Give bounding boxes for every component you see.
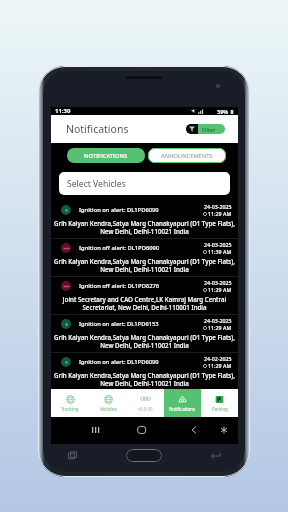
staticText: Filter (202, 126, 216, 133)
staticText: Parking (212, 406, 228, 412)
button[interactable]: ANNOUNCEMENTS (148, 148, 226, 163)
staticText: Notifications (66, 122, 129, 136)
button[interactable]: NOTIFICATIONS (67, 148, 145, 163)
staticText: Grih Kalyan Kendra,Satya Marg Chanakyapu… (51, 333, 238, 341)
staticText: 24-03-2025 (204, 203, 232, 210)
staticText: Select Vehicles (67, 178, 126, 190)
button[interactable]: Ignition off alert: DL1PD6276 (51, 277, 238, 314)
button[interactable]: Ignition on alert: DL1PD6090 (51, 353, 238, 389)
staticText: Notifications (169, 406, 196, 412)
staticText: Vehicles (100, 406, 117, 412)
button[interactable]: Ignition on alert: DL1PD6090 (51, 201, 238, 238)
button[interactable]: Select Vehicles (59, 172, 230, 195)
staticText: New Delhi, Delhi-110021 India (51, 379, 238, 387)
staticText: Secretariat, New Delhi, Delhi-110001 Ind… (51, 303, 238, 311)
staticText: 11:29 AM (208, 286, 232, 293)
button[interactable]: Ignition off alert: DL1PD6090 (51, 239, 238, 276)
staticText: 24-03-2025 (204, 317, 232, 324)
button[interactable]: Ignition on alert: DL1PD6153 (51, 315, 238, 352)
staticText: 24-03-2025 (204, 241, 232, 248)
button[interactable]: Parking (201, 389, 238, 417)
staticText: Grih Kalyan Kendra,Satya Marg Chanakyapu… (51, 257, 238, 265)
staticText: ANNOUNCEMENTS (161, 152, 213, 160)
staticText: New Delhi, Delhi-110021 India (51, 265, 238, 273)
staticText: Ignition on alert: DL1PD6090 (79, 358, 159, 366)
staticText: Ignition off alert: DL1PD6090 (79, 244, 160, 252)
staticText: 11:29 AM (208, 210, 232, 217)
staticText: 11:30 (55, 107, 71, 115)
staticText: 24-03-2025 (204, 279, 232, 286)
staticText: Ignition off alert: DL1PD6276 (79, 282, 160, 290)
staticText: Ignition on alert: DL1PD6090 (79, 206, 159, 214)
button[interactable]: v9.9.30 (127, 389, 164, 417)
staticText: 39% (217, 108, 229, 115)
button[interactable]: Filter (186, 124, 225, 134)
staticText: 11:29 AM (208, 324, 232, 331)
staticText: Grih Kalyan Kendra,Satya Marg Chanakyapu… (51, 371, 238, 379)
staticText: Grih Kalyan Kendra,Satya Marg Chanakyapu… (51, 219, 238, 227)
button[interactable]: Notifications (164, 389, 201, 417)
staticText: New Delhi, Delhi-110021 India (51, 227, 238, 235)
staticText: Tracking (61, 406, 79, 412)
staticText: NOTIFICATIONS (84, 152, 128, 160)
button[interactable]: Vehicles (89, 389, 127, 417)
staticText: 24-02-2025 (204, 355, 232, 362)
button[interactable]: Tracking (51, 389, 89, 417)
staticText: Ignition on alert: DL1PD6153 (79, 320, 159, 328)
staticText: v9.9.30 (138, 406, 153, 412)
staticText: 11:29 AM (208, 362, 232, 369)
staticText: Joint Secretary and CAO Centre,LK Kamraj… (51, 295, 238, 303)
staticText: New Delhi, Delhi-110021 India (51, 341, 238, 349)
staticText: 11:39 AM (208, 248, 232, 255)
